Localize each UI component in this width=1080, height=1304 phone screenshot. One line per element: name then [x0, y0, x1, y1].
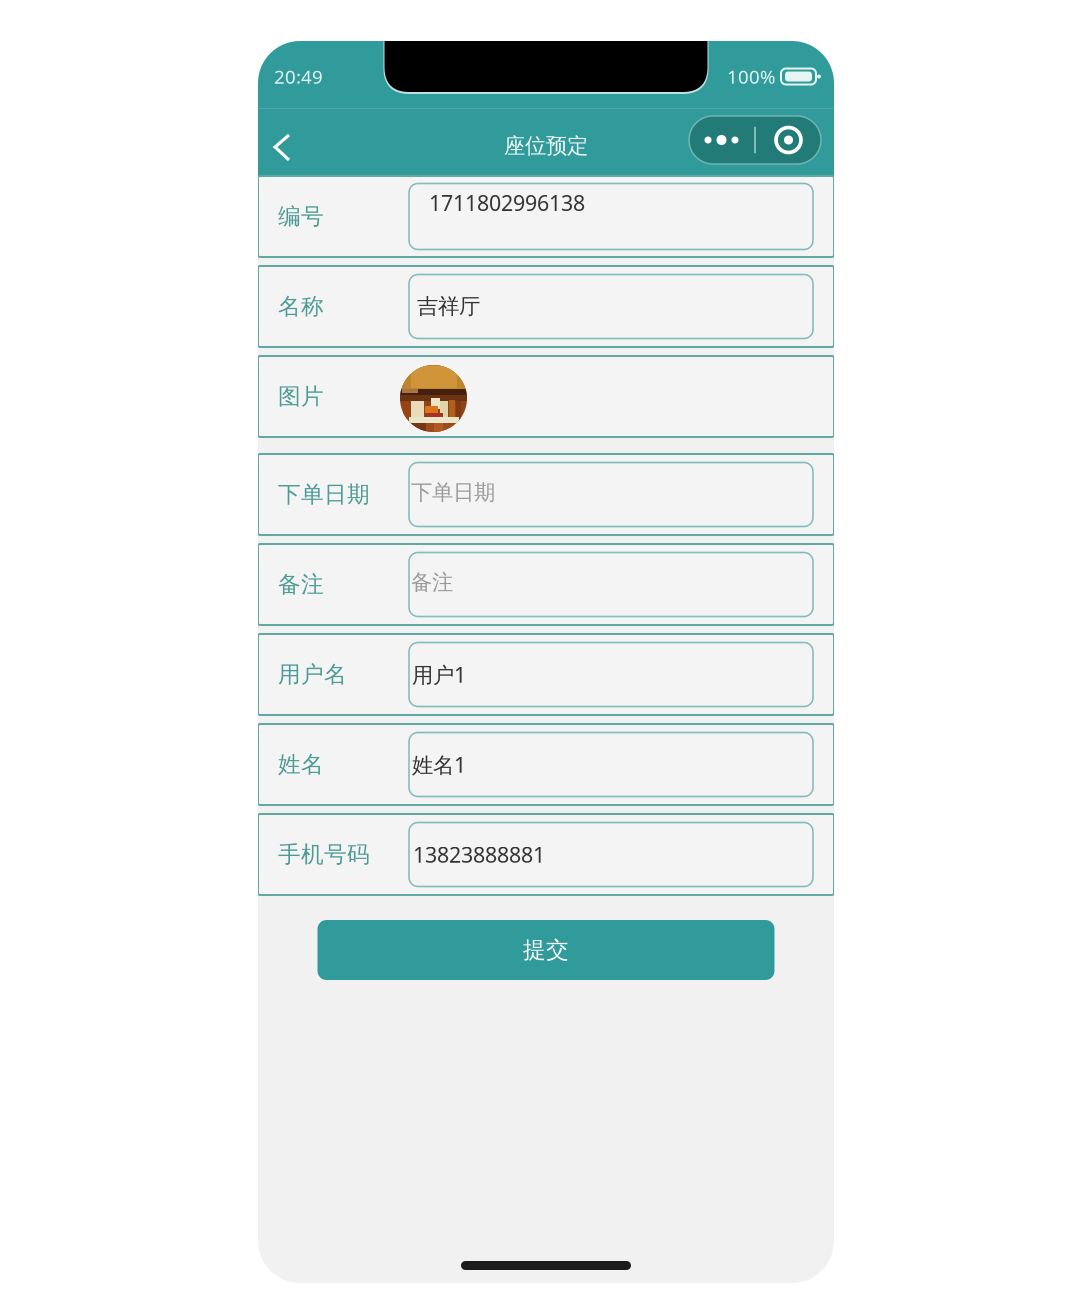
button[interactable]: 提交: [317, 920, 774, 980]
staticText: 100%: [727, 64, 776, 89]
staticText: 姓名1: [412, 750, 466, 779]
staticText: 图片: [278, 383, 324, 410]
staticText: 吉祥厅: [417, 293, 480, 320]
button[interactable]: 返回: [265, 123, 313, 171]
staticText: 提交: [523, 936, 569, 964]
staticText: 编号: [278, 203, 324, 230]
staticText: 下单日期: [278, 481, 370, 508]
staticText: 1711802996138: [429, 188, 585, 217]
staticText: 备注: [278, 571, 324, 598]
button[interactable]: 更多: [689, 116, 754, 164]
button[interactable]: 关闭: [756, 116, 821, 164]
staticText: 20:49: [274, 64, 323, 89]
staticText: 13823888881: [413, 840, 545, 869]
staticText: 用户1: [412, 660, 466, 689]
staticText: 座位预定: [504, 133, 588, 159]
staticText: 手机号码: [278, 841, 370, 868]
staticText: 下单日期: [411, 479, 495, 506]
staticText: 名称: [278, 293, 324, 320]
staticText: 姓名: [278, 751, 324, 778]
staticText: 备注: [411, 569, 453, 596]
staticText: 用户名: [278, 661, 347, 688]
